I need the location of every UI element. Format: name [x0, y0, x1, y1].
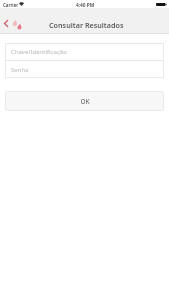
staticText: 4:40 PM [76, 2, 95, 9]
button[interactable]: Senha [5, 61, 164, 78]
staticText: Chave/Identificação [11, 48, 67, 56]
staticText: OK [80, 97, 90, 106]
staticText: Senha [11, 66, 29, 74]
staticText: Consultar Resultados [49, 20, 124, 30]
button[interactable]: OK [5, 91, 164, 111]
button[interactable]: Chave/Identificação [5, 43, 164, 60]
staticText: Carrier [3, 2, 19, 8]
button[interactable]: Back [0, 8, 24, 34]
